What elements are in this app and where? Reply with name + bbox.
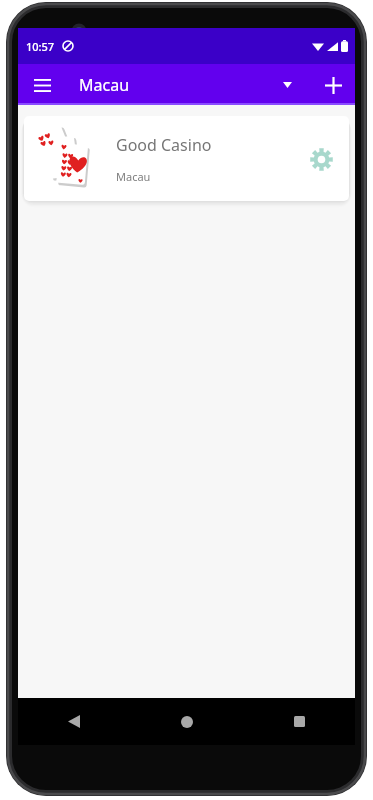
button[interactable]: Back [50,698,98,745]
button[interactable]: Add [315,67,351,103]
button[interactable]: Settings [303,141,339,177]
staticText: Macau [116,169,151,184]
button[interactable]: Select list [273,71,301,99]
staticText: Macau [79,74,130,96]
button[interactable]: Home [163,698,211,745]
button[interactable]: Recent apps [275,698,323,745]
button[interactable]: Open navigation menu [26,69,58,101]
staticText: Good Casino [116,134,212,156]
button[interactable]: Good Casino [24,116,349,201]
staticText: 10:57 [26,39,55,54]
